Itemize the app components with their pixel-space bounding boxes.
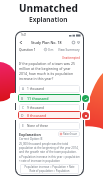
staticText: 0 m [48,48,54,52]
staticText: 11 thousand [27,96,49,101]
staticText: 9:41 [21,33,27,37]
staticText: a Population increase in this year = pop… [19,155,80,163]
button[interactable]: Raise Issue [58,131,80,137]
other: Correct answer [82,95,89,102]
staticText: 1 thousand [27,87,44,91]
button[interactable]: C [19,104,80,112]
staticText: C [22,106,24,110]
staticText: If the population of a town was 25 milli… [19,61,80,81]
button[interactable]: E [19,122,80,130]
staticText: A [22,87,24,91]
button[interactable]: Back [18,40,23,45]
staticText: Explanation [19,132,41,137]
staticText: View Summary [58,48,80,52]
staticText: 25,000 thousand people was the total pop… [19,142,80,154]
staticText: Study Plan No. 18 [31,40,62,45]
staticText: Raise Issue [63,132,78,136]
staticText: Unmatched [19,1,78,15]
staticText: Correct Option: B [19,137,43,141]
staticText: Explanation [29,15,68,24]
button[interactable]: A [19,85,80,93]
other: Incorrect answer [82,112,89,119]
staticText: 8 thousand [27,113,47,118]
button[interactable]: D [10,110,90,120]
staticText: Population increase = Population × Rate … [22,165,77,173]
staticText: E [22,124,24,128]
staticText: B [21,96,24,101]
staticText: Unattempted [62,56,80,60]
staticText: None of these [27,124,49,128]
button[interactable]: Calculator [71,40,76,45]
staticText: 9 thousand [27,106,44,110]
button[interactable]: B [10,93,90,103]
staticText: Question 1 [19,48,36,52]
button[interactable]: Bookmark [76,40,81,45]
staticText: D [21,113,24,118]
